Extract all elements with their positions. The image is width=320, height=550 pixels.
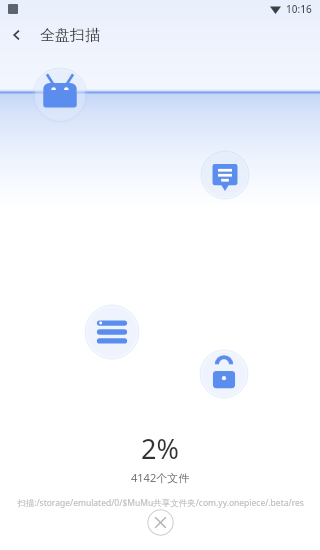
staticText: 全盘扫描 (40, 26, 100, 45)
staticText: 扫描:/storage/emulated/0/$MuMu共享文件夹/com.yy… (17, 497, 304, 509)
button[interactable]: Cancel scan (147, 509, 174, 536)
staticText: 10:16 (286, 2, 312, 16)
button[interactable]: Back (0, 18, 34, 52)
staticText: 4142个文件 (131, 470, 190, 485)
staticText: 2% (141, 430, 179, 467)
